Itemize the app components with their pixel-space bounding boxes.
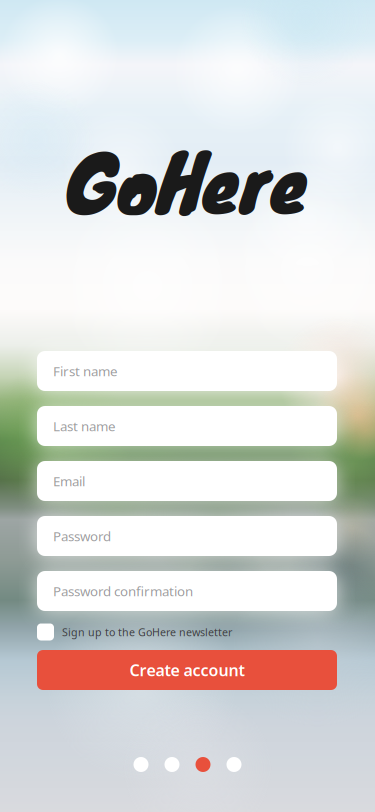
button[interactable]: Create account	[37, 650, 337, 690]
staticText: Email	[53, 472, 85, 490]
button[interactable]: Sign up to the GoHere newsletter	[37, 623, 337, 641]
staticText: Sign up to the GoHere newsletter	[62, 625, 232, 639]
button[interactable]: Email	[37, 461, 337, 501]
staticText: Last name	[53, 417, 116, 435]
staticText: Password confirmation	[53, 582, 193, 600]
button[interactable]: Password	[37, 516, 337, 556]
staticText: Create account	[129, 659, 244, 681]
staticText: Password	[53, 527, 111, 545]
button[interactable]: First name	[37, 351, 337, 391]
staticText: GoHere	[67, 120, 307, 240]
staticText: First name	[53, 362, 118, 380]
button[interactable]: Last name	[37, 406, 337, 446]
button[interactable]: Password confirmation	[37, 571, 337, 611]
